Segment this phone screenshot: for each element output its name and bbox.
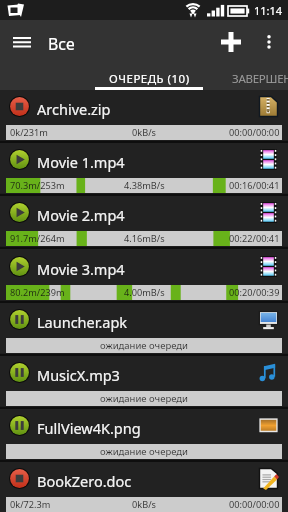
button[interactable]: Archive.zip [0, 90, 288, 143]
staticText: 11:14 [254, 3, 283, 18]
staticText: 80.2m/239m [10, 286, 65, 299]
staticText: 00:00/00:00 [229, 498, 280, 511]
staticText: 0kB/s [132, 498, 156, 511]
button[interactable]: Movie 3.mp4 [0, 250, 288, 303]
staticText: ожидание очереди [100, 339, 189, 352]
staticText: 70.3m/253m [10, 179, 65, 192]
staticText: FullView4K.png [37, 418, 141, 438]
staticText: Все [48, 33, 75, 55]
staticText: Archive.zip [37, 99, 111, 119]
staticText: ожидание очереди [100, 392, 189, 405]
staticText: Movie 2.mp4 [37, 205, 125, 225]
staticText: 0k/72.3m [10, 498, 51, 511]
staticText: BookZero.doc [37, 471, 132, 491]
button[interactable]: Movie 1.mp4 [0, 143, 288, 196]
staticText: 00:16/00:41 [229, 179, 280, 192]
staticText: 4.16mB/s [124, 232, 165, 245]
button[interactable]: MusicX.mp3 [0, 356, 288, 409]
button[interactable]: Add [209, 20, 253, 64]
staticText: 4.38mB/s [124, 179, 165, 192]
staticText: Movie 3.mp4 [37, 259, 125, 279]
staticText: ОЧЕРЕДЬ (10) [109, 71, 190, 87]
staticText: MusicX.mp3 [37, 365, 120, 385]
staticText: ожидание очереди [100, 445, 189, 458]
staticText: ЗАВЕРШЕНО [232, 71, 288, 87]
staticText: 00:00/00:00 [229, 126, 280, 139]
button[interactable]: ОЧЕРЕДЬ (10) [95, 64, 203, 90]
staticText: 00:22/00:41 [229, 232, 280, 245]
staticText: 0k/231m [10, 126, 48, 139]
staticText: 91.7m/264m [10, 232, 65, 245]
staticText: Launcher.apk [37, 312, 128, 332]
button[interactable]: Movie 2.mp4 [0, 196, 288, 249]
button[interactable]: Menu [0, 20, 44, 64]
button[interactable]: BookZero.doc [0, 462, 288, 512]
button[interactable]: ЗАВЕРШЕНО [203, 64, 288, 90]
button[interactable]: Launcher.apk [0, 303, 288, 356]
staticText: 0kB/s [132, 126, 156, 139]
button[interactable]: FullView4K.png [0, 409, 288, 462]
button[interactable]: More options [252, 20, 286, 64]
staticText: Movie 1.mp4 [37, 152, 125, 172]
staticText: 00:20/00:39 [229, 286, 280, 299]
staticText: 4.00mB/s [124, 286, 165, 299]
